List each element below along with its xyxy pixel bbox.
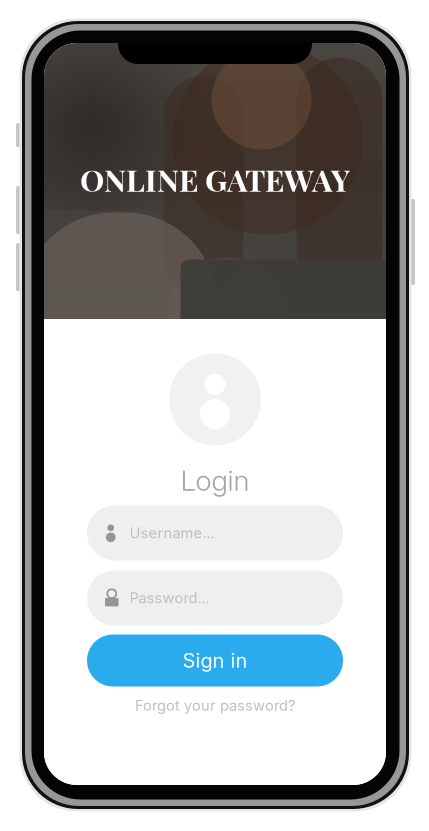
button[interactable]: Sign in [87,634,343,686]
staticText: Password... [129,589,209,607]
button[interactable]: Password... [87,570,343,625]
staticText: Sign in [182,648,247,673]
staticText: Login [180,464,249,497]
staticText: Forgot your password? [135,697,295,714]
button[interactable]: Forgot your password? [87,690,343,720]
staticText: Username... [129,524,214,542]
staticText: ONLINE GATEWAY [80,159,350,199]
button[interactable]: Username... [87,505,343,560]
